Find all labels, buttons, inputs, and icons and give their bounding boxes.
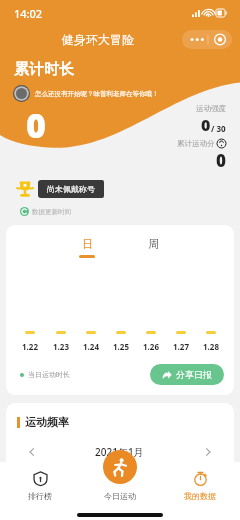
staticText: 累计时长: [14, 60, 74, 79]
button[interactable]: 今日运动: [80, 462, 160, 520]
staticText: 排行榜: [28, 491, 52, 501]
staticText: 我的数据: [184, 491, 216, 501]
staticText: 数据更新时间: [32, 208, 71, 216]
staticText: 2021年1月: [95, 445, 144, 459]
staticText: 1.28: [203, 341, 219, 352]
staticText: 1.24: [83, 341, 99, 352]
staticText: 1.26: [143, 341, 159, 352]
staticText: 日: [82, 237, 93, 251]
staticText: 健身环大冒险: [62, 32, 134, 47]
button[interactable]: Today workout: [103, 450, 137, 484]
button[interactable]: More and close: [182, 30, 232, 49]
staticText: 0: [26, 102, 46, 148]
button[interactable]: Next month: [202, 446, 214, 458]
staticText: 分享日报: [176, 369, 212, 380]
button[interactable]: 日: [65, 237, 109, 258]
staticText: 运动强度: [196, 104, 226, 113]
staticText: 怎么还没有开始呢？味普利老师在等你哦！: [35, 90, 159, 98]
staticText: 今日运动: [104, 491, 136, 501]
button[interactable]: 尚未佩戴称号: [14, 178, 104, 200]
staticText: 1.27: [173, 341, 189, 352]
staticText: 尚未佩戴称号: [47, 184, 95, 194]
staticText: 0: [216, 149, 226, 172]
staticText: 运动频率: [25, 415, 69, 429]
staticText: 当日运动时长: [28, 370, 70, 379]
button[interactable]: 分享日报: [150, 364, 224, 385]
staticText: 累计运动分: [177, 139, 215, 148]
staticText: 1.23: [53, 341, 69, 352]
staticText: 1.22: [22, 341, 38, 352]
staticText: / 30: [211, 123, 226, 134]
button[interactable]: 排行榜: [0, 462, 80, 520]
button[interactable]: Help: [217, 139, 226, 148]
button[interactable]: Previous month: [26, 446, 38, 458]
button[interactable]: 周: [131, 237, 175, 258]
staticText: 1.25: [113, 341, 129, 352]
staticText: 0: [201, 114, 211, 136]
staticText: 14:02: [14, 6, 43, 21]
button[interactable]: 数据更新时间: [20, 207, 71, 216]
staticText: 周: [148, 237, 159, 251]
button[interactable]: 我的数据: [160, 462, 240, 520]
